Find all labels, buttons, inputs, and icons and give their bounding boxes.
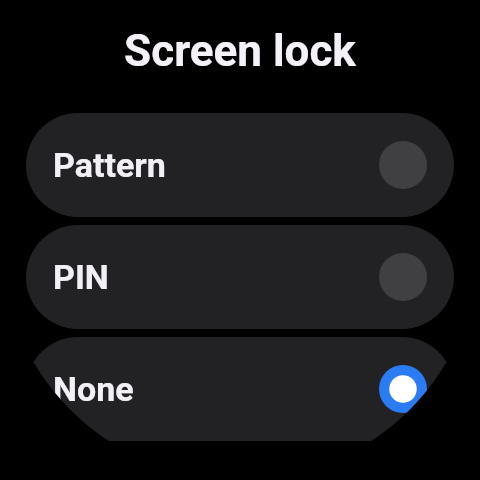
- button[interactable]: Pattern: [26, 113, 454, 217]
- other: Screen lock settings: [0, 0, 480, 480]
- staticText: None: [53, 369, 134, 409]
- button[interactable]: PIN: [26, 225, 454, 329]
- staticText: PIN: [53, 257, 109, 297]
- button[interactable]: None: [26, 337, 454, 441]
- staticText: Screen lock: [0, 25, 480, 77]
- staticText: Pattern: [53, 145, 166, 185]
